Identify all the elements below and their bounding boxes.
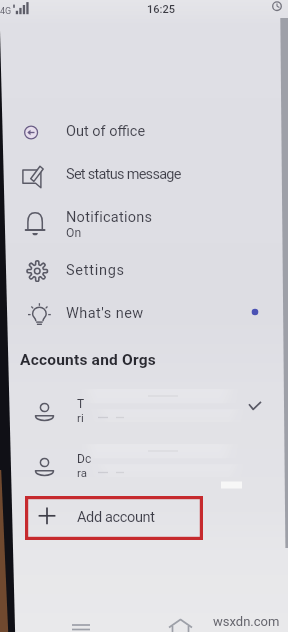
staticText: Out of office <box>66 123 146 140</box>
staticText: 16:25 <box>147 3 175 16</box>
button[interactable]: Set status message <box>0 153 288 196</box>
button[interactable]: Out of office <box>0 110 288 153</box>
staticText: What's new <box>66 305 144 322</box>
button[interactable]: T <box>0 385 288 440</box>
staticText: Settings <box>66 262 125 279</box>
staticText: Set status message <box>66 166 181 183</box>
button[interactable]: Home <box>163 614 199 632</box>
staticText: Dc <box>77 452 92 466</box>
staticText: wsxdn.com <box>213 614 280 629</box>
button[interactable]: Recent apps <box>66 614 102 632</box>
staticText: Notifications <box>66 209 153 226</box>
staticText: On <box>66 226 82 240</box>
staticText: Add account <box>77 509 155 526</box>
other: New updates <box>251 308 259 316</box>
button[interactable]: Dc <box>0 440 288 495</box>
staticText: T <box>77 397 85 411</box>
staticText: Accounts and Orgs <box>20 351 156 369</box>
staticText: 4G <box>0 6 12 17</box>
button[interactable]: Notifications <box>0 196 288 249</box>
staticText: ra <box>77 466 87 479</box>
button[interactable]: Settings <box>0 249 288 292</box>
button[interactable]: Add account <box>25 496 203 540</box>
button[interactable]: What's new <box>0 292 288 335</box>
staticText: ri <box>77 411 84 424</box>
